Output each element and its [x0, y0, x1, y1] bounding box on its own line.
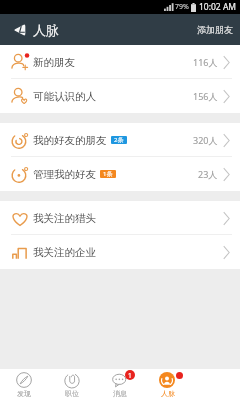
staticText: 我关注的猎头	[33, 212, 96, 225]
button[interactable]: 新的朋友	[0, 45, 240, 79]
button[interactable]: Back	[13, 23, 27, 37]
staticText: 管理我的好友	[33, 168, 96, 181]
staticText: 79%	[175, 2, 189, 12]
staticText: 116人	[193, 56, 218, 68]
staticText: 我关注的企业	[33, 246, 96, 259]
button[interactable]: 管理我的好友	[0, 157, 240, 191]
button[interactable]: 职位	[48, 369, 96, 400]
button[interactable]: 1	[96, 369, 144, 400]
staticText: 可能认识的人	[33, 90, 96, 103]
button[interactable]: 我关注的猎头	[0, 201, 240, 235]
staticText: 职位	[65, 389, 79, 398]
button[interactable]: 可能认识的人	[0, 79, 240, 113]
staticText: 发现	[17, 389, 31, 398]
staticText: 1条	[103, 170, 113, 178]
staticText: 消息	[113, 389, 127, 398]
staticText: 10:02 AM	[199, 1, 237, 13]
staticText: 人脉	[161, 389, 175, 398]
button[interactable]: 发现	[0, 369, 48, 400]
staticText: 23人	[198, 168, 218, 180]
staticText: 添加朋友	[197, 24, 233, 35]
staticText: 320人	[193, 134, 218, 146]
button[interactable]: 人脉	[144, 369, 192, 400]
button[interactable]: 添加朋友	[190, 18, 240, 41]
staticText: 新的朋友	[33, 56, 75, 69]
staticText: 156人	[193, 90, 218, 102]
staticText: 我的好友的朋友	[33, 134, 107, 147]
staticText: 2条	[114, 136, 124, 144]
staticText: 人脉	[33, 22, 59, 38]
button[interactable]: 我的好友的朋友	[0, 123, 240, 157]
staticText: 1	[128, 371, 132, 380]
button[interactable]: 我关注的企业	[0, 235, 240, 269]
